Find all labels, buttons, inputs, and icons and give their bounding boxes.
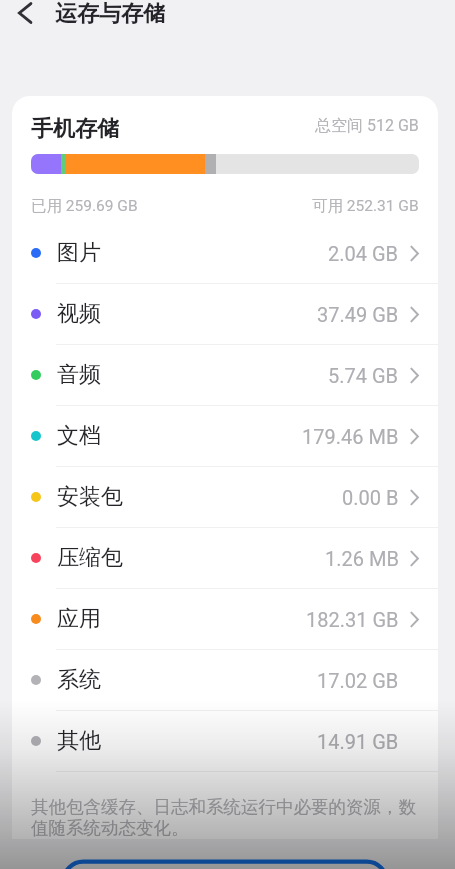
button[interactable]: 文档 (12, 406, 438, 466)
staticText: 0.00 B (342, 486, 399, 509)
staticText: 文档 (57, 422, 101, 450)
button[interactable]: Clean up (0, 0, 455, 869)
button[interactable]: Back (6, 0, 44, 32)
staticText: 压缩包 (57, 544, 123, 572)
staticText: 5.74 GB (328, 364, 399, 387)
button[interactable]: 其他 (12, 711, 438, 771)
staticText: 音频 (57, 361, 101, 389)
staticText: 系统 (57, 666, 101, 694)
staticText: 1.26 MB (325, 547, 399, 570)
staticText: 其他 (57, 727, 101, 755)
staticText: 17.02 GB (317, 669, 399, 692)
staticText: 已用 259.69 GB (31, 196, 138, 216)
button[interactable]: 应用 (12, 589, 438, 649)
staticText: 2.04 GB (328, 242, 399, 265)
staticText: 图片 (57, 239, 101, 267)
staticText: 182.31 GB (306, 608, 399, 631)
staticText: 179.46 MB (302, 425, 399, 448)
button[interactable]: 图片 (12, 223, 438, 283)
staticText: 运存与存储 (55, 0, 165, 28)
staticText: 安装包 (57, 483, 123, 511)
staticText: 视频 (57, 300, 101, 328)
staticText: 应用 (57, 605, 101, 633)
staticText: 其他包含缓存、日志和系统运行中必要的资源，数值随系统动态变化。 (31, 796, 419, 839)
button[interactable]: 系统 (12, 650, 438, 710)
button[interactable]: 安装包 (12, 467, 438, 527)
staticText: 总空间 512 GB (315, 116, 419, 136)
staticText: 14.91 GB (317, 730, 399, 753)
staticText: 37.49 GB (317, 303, 399, 326)
staticText: 手机存储 (31, 115, 119, 143)
button[interactable]: 视频 (12, 284, 438, 344)
button[interactable]: 音频 (12, 345, 438, 405)
staticText: 可用 252.31 GB (312, 196, 419, 216)
button[interactable]: 压缩包 (12, 528, 438, 588)
